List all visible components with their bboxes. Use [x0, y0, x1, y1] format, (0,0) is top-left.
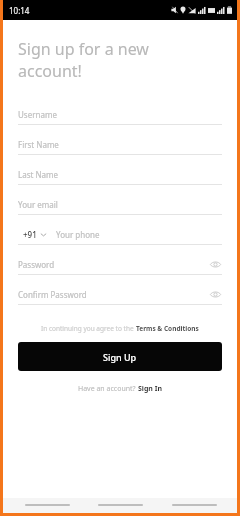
- button[interactable]: Your email: [18, 194, 222, 224]
- button[interactable]: First Name: [18, 134, 222, 164]
- button[interactable]: Sign Up: [18, 342, 222, 371]
- button[interactable]: Home: [90, 498, 150, 513]
- button[interactable]: Last Name: [18, 164, 222, 194]
- staticText: +91: [23, 229, 37, 240]
- button[interactable]: +91: [18, 224, 222, 244]
- button[interactable]: Username: [18, 104, 222, 134]
- staticText: Your phone: [56, 229, 100, 240]
- staticText: Have an account?: [78, 384, 138, 394]
- staticText: Sign up for a new account!: [18, 38, 149, 82]
- staticText: Password: [18, 259, 55, 270]
- button[interactable]: Terms & Conditions: [136, 324, 199, 333]
- button[interactable]: Confirm Password: [18, 284, 222, 314]
- staticText: Sign Up: [103, 351, 137, 363]
- staticText: Username: [18, 109, 57, 120]
- button[interactable]: Back: [17, 498, 77, 513]
- button[interactable]: Sign In: [138, 384, 163, 394]
- button[interactable]: Toggle password visibility: [208, 257, 222, 271]
- staticText: In continuing you agree to the: [41, 324, 136, 333]
- staticText: Last Name: [18, 169, 59, 180]
- button[interactable]: Recents: [164, 498, 224, 513]
- staticText: First Name: [18, 139, 59, 150]
- staticText: Sign In: [138, 384, 163, 394]
- staticText: Confirm Password: [18, 289, 87, 300]
- button[interactable]: Toggle password visibility: [208, 287, 222, 301]
- button[interactable]: Password: [18, 254, 222, 284]
- staticText: Your email: [18, 199, 58, 210]
- staticText: Terms & Conditions: [136, 324, 199, 333]
- staticText: 10:14: [9, 5, 30, 16]
- other: Select country code: [40, 231, 47, 238]
